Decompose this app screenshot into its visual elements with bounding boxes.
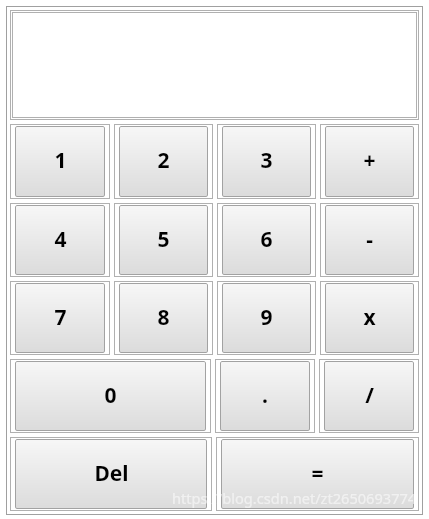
staticText: 9 <box>260 303 273 332</box>
button[interactable]: 1 <box>10 124 110 199</box>
button[interactable]: 8 <box>114 281 213 355</box>
button[interactable]: + <box>320 124 419 199</box>
staticText: + <box>363 146 376 175</box>
button[interactable]: 9 <box>217 281 316 355</box>
staticText: x <box>363 303 376 332</box>
button[interactable]: 0 <box>10 359 211 433</box>
button[interactable]: 3 <box>217 124 316 199</box>
staticText: 4 <box>54 225 67 254</box>
staticText: = <box>311 459 324 488</box>
button[interactable]: 6 <box>217 203 316 277</box>
staticText: . <box>262 381 268 410</box>
button[interactable]: x <box>320 281 419 355</box>
button[interactable]: 5 <box>114 203 213 277</box>
staticText: 1 <box>54 146 67 175</box>
staticText: 5 <box>157 225 170 254</box>
button[interactable]: - <box>320 203 419 277</box>
button[interactable]: 4 <box>10 203 110 277</box>
staticText: - <box>366 225 373 254</box>
button[interactable]: Del <box>10 437 212 511</box>
button[interactable]: / <box>319 359 419 433</box>
staticText: Del <box>94 459 129 488</box>
staticText: https://blog.csdn.net/zt2650693774 <box>172 488 417 508</box>
button[interactable]: = <box>216 437 419 511</box>
staticText: / <box>365 381 374 410</box>
button[interactable]: 2 <box>114 124 213 199</box>
staticText: 3 <box>260 146 273 175</box>
staticText: 7 <box>54 303 67 332</box>
button[interactable]: . <box>215 359 315 433</box>
staticText: 6 <box>260 225 273 254</box>
staticText: 2 <box>157 146 170 175</box>
staticText: 8 <box>157 303 170 332</box>
other: Calculator display <box>12 12 417 118</box>
staticText: 0 <box>104 381 117 410</box>
button[interactable]: 7 <box>10 281 110 355</box>
